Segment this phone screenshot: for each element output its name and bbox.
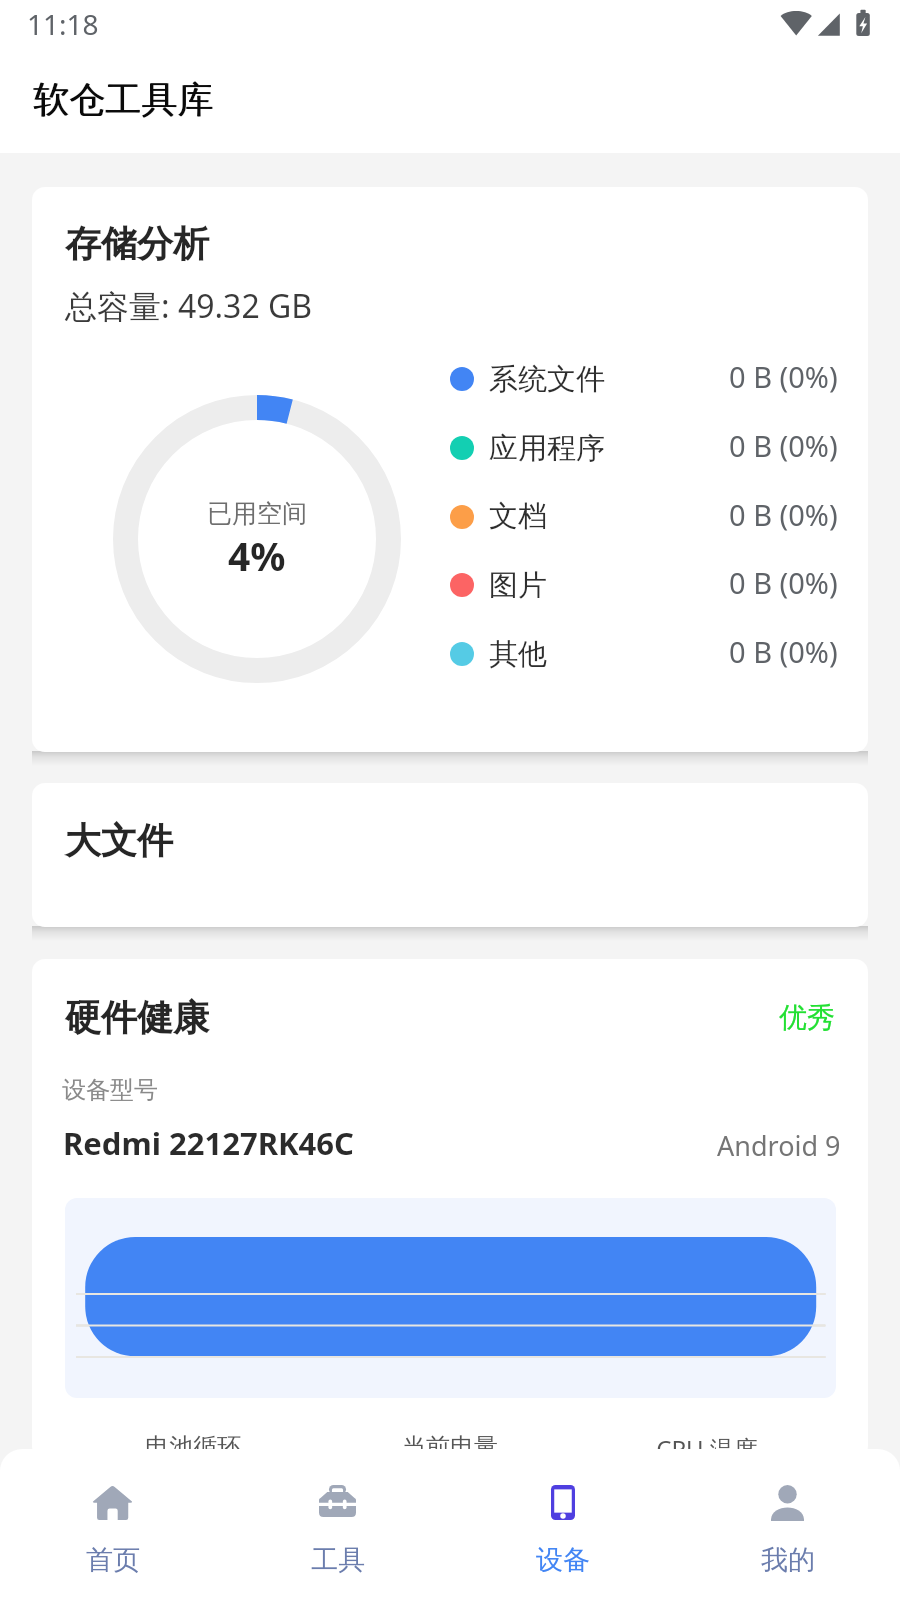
staticText: Android 9 xyxy=(717,1127,841,1164)
button[interactable]: 存储分析 xyxy=(32,187,868,752)
staticText: 总容量: 49.32 GB xyxy=(65,284,313,328)
staticText: 0 B (0%) xyxy=(729,426,838,465)
button[interactable]: Device xyxy=(450,1449,675,1600)
staticText: 应用程序 xyxy=(489,430,605,467)
staticText: 图片 xyxy=(489,567,547,604)
staticText: 硬件健康 xyxy=(65,995,209,1040)
button[interactable]: Tools xyxy=(225,1449,450,1600)
staticText: 11:18 xyxy=(27,5,99,43)
staticText: 当前电量 xyxy=(402,1432,498,1459)
staticText: 0 B (0%) xyxy=(729,563,838,602)
staticText: 设备 xyxy=(536,1543,590,1577)
staticText: 软仓工具库 xyxy=(34,77,214,122)
staticText: 系统文件 xyxy=(489,361,605,398)
button[interactable]: 硬件健康 xyxy=(32,959,868,1459)
staticText: 已用空间 xyxy=(207,498,307,529)
staticText: CPU 温度 xyxy=(656,1432,758,1459)
staticText: 工具 xyxy=(311,1543,365,1577)
staticText: 优秀 xyxy=(779,1000,835,1035)
staticText: 文档 xyxy=(489,498,547,535)
staticText: 设备型号 xyxy=(62,1075,158,1105)
staticText: 4% xyxy=(228,529,286,582)
staticText: 电池循环 xyxy=(145,1432,241,1459)
staticText: 大文件 xyxy=(65,818,173,863)
button[interactable]: Home xyxy=(0,1449,225,1600)
staticText: 0 B (0%) xyxy=(729,357,838,396)
staticText: 0 B (0%) xyxy=(729,495,838,534)
staticText: 软仓工具库 xyxy=(33,77,213,122)
button[interactable]: 大文件 xyxy=(32,783,868,927)
staticText: 我的 xyxy=(761,1543,815,1577)
staticText: 存储分析 xyxy=(65,221,209,266)
staticText: Redmi 22127RK46C xyxy=(63,1122,354,1164)
button[interactable]: Profile xyxy=(675,1449,900,1600)
staticText: 0 B (0%) xyxy=(729,632,838,671)
staticText: 首页 xyxy=(86,1543,140,1577)
staticText: 其他 xyxy=(489,636,547,673)
